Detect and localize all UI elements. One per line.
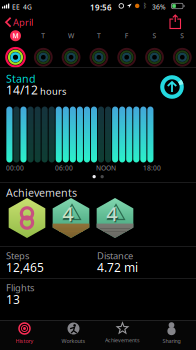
- staticText: 14/12: [6, 82, 38, 98]
- staticText: 4: [62, 200, 73, 227]
- button[interactable]: [159, 74, 184, 99]
- button[interactable]: S: [144, 30, 165, 68]
- staticText: 06:00: [55, 163, 73, 172]
- staticText: W: [68, 31, 74, 40]
- staticText: Distance: [97, 249, 133, 262]
- staticText: Stand: [6, 71, 36, 86]
- button[interactable]: [7, 198, 46, 238]
- button[interactable]: F: [116, 30, 137, 68]
- staticText: 18:00: [143, 163, 161, 172]
- staticText: 4: [107, 201, 118, 228]
- button[interactable]: Workouts: [49, 322, 98, 345]
- staticText: Sharing: [162, 337, 180, 345]
- button[interactable]: W: [61, 30, 82, 68]
- staticText: S: [180, 31, 184, 40]
- staticText: 4: [63, 201, 74, 228]
- button[interactable]: Sharing: [147, 322, 196, 345]
- staticText: 4.72 mi: [97, 259, 138, 275]
- button[interactable]: 4: [51, 198, 90, 238]
- button[interactable]: 4: [95, 198, 134, 238]
- button[interactable]: T: [88, 30, 109, 68]
- staticText: F: [125, 31, 129, 40]
- staticText: 19:56: [90, 2, 112, 13]
- staticText: 4G: [23, 2, 32, 11]
- staticText: NOON: [96, 163, 116, 172]
- staticText: hours: [40, 85, 66, 97]
- staticText: EE: [12, 2, 20, 11]
- staticText: History: [15, 337, 33, 345]
- button[interactable]: T: [33, 30, 54, 68]
- staticText: April: [13, 16, 33, 28]
- staticText: 13: [6, 291, 20, 307]
- staticText: Achievements: [6, 185, 77, 200]
- button[interactable]: April: [6, 16, 33, 28]
- button[interactable]: Achievements: [98, 323, 147, 344]
- staticText: S: [152, 31, 156, 40]
- staticText: Achievements: [105, 337, 140, 344]
- button[interactable]: [170, 15, 180, 28]
- staticText: 4: [106, 200, 117, 227]
- button[interactable]: History: [0, 322, 49, 345]
- button[interactable]: M: [5, 30, 26, 68]
- staticText: Workouts: [61, 337, 85, 345]
- staticText: Flights: [6, 281, 34, 294]
- staticText: 36%: [152, 2, 166, 11]
- staticText: Steps: [6, 249, 29, 262]
- button[interactable]: S: [172, 30, 193, 68]
- staticText: M: [12, 31, 18, 40]
- staticText: 12,465: [6, 259, 44, 275]
- staticText: 00:00: [6, 163, 24, 172]
- staticText: T: [41, 31, 45, 40]
- staticText: ᛒ: [143, 2, 147, 9]
- staticText: T: [97, 31, 101, 40]
